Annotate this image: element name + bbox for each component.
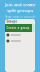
staticText: Join and create [5,2,35,7]
staticText: Groups [7,20,17,23]
staticText: Create a group [7,26,30,30]
staticText: Share costs in seconds [5,15,35,19]
staticText: split groups [7,8,33,13]
